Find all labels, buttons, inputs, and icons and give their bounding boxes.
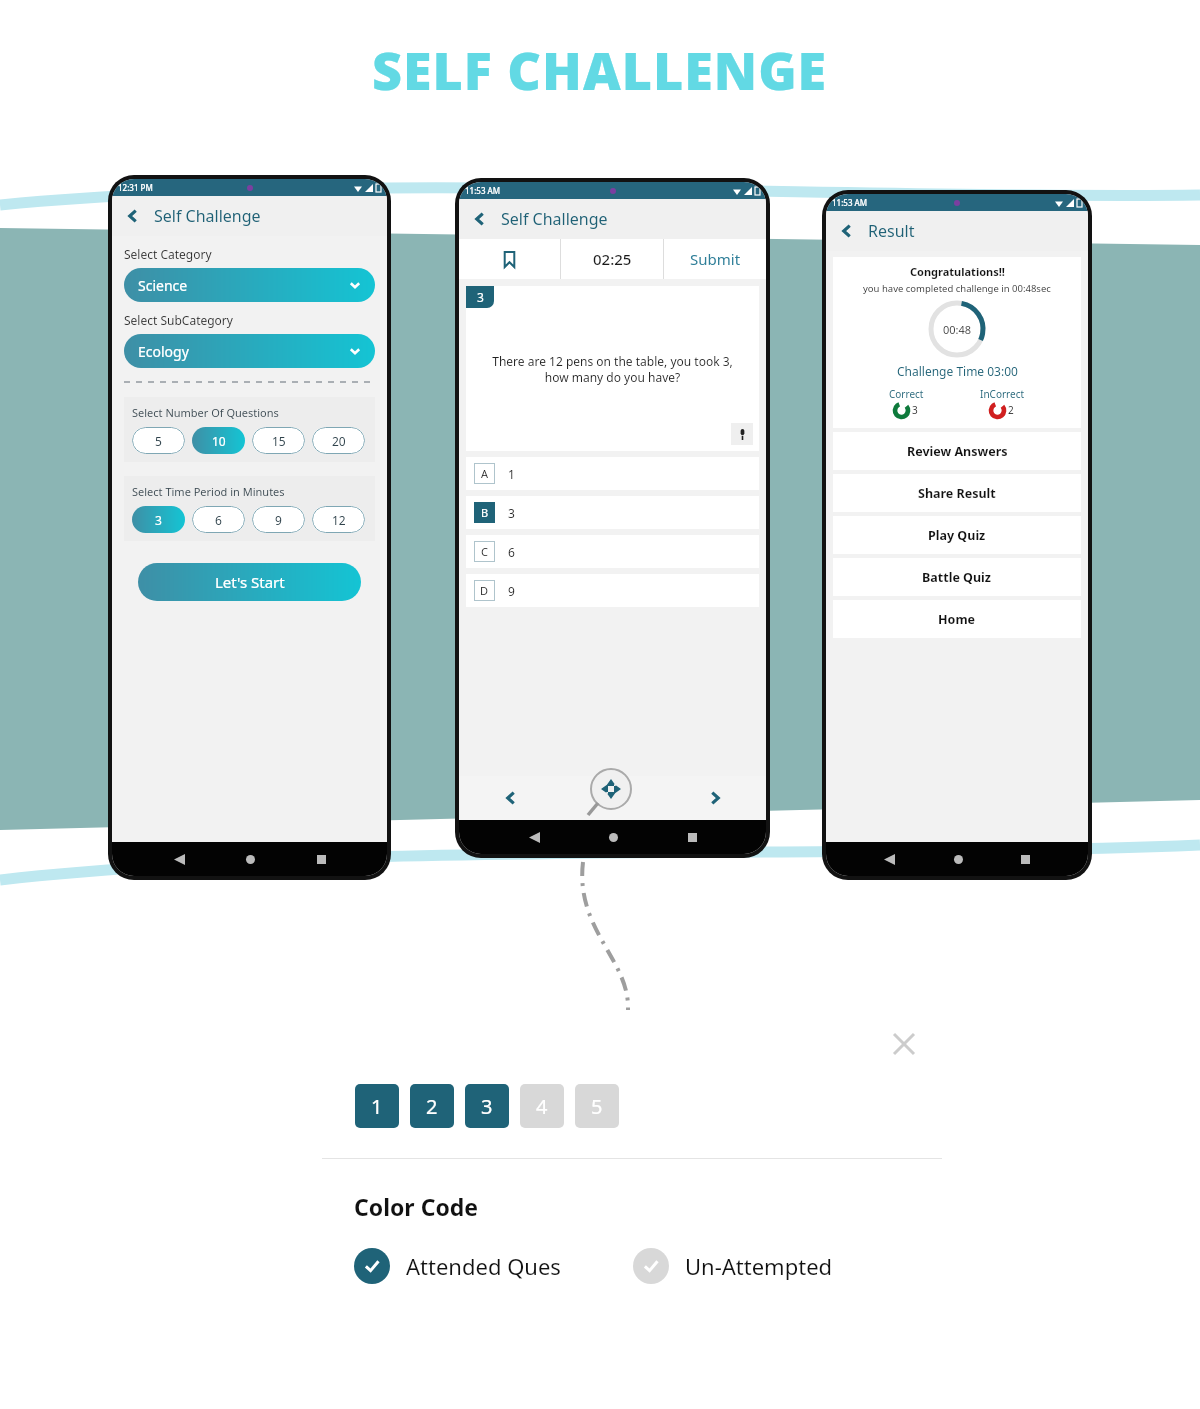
staticText: 02:25: [593, 249, 632, 269]
staticText: 10: [212, 433, 226, 449]
button[interactable]: Battle Quiz: [833, 558, 1081, 596]
staticText: A: [481, 466, 489, 481]
staticText: C: [481, 544, 488, 559]
staticText: 9: [508, 583, 515, 599]
staticText: 11:53 AM: [465, 185, 501, 196]
staticText: Select Number Of Questions: [132, 405, 279, 420]
staticText: InCorrect: [980, 387, 1025, 401]
button[interactable]: Back: [120, 203, 146, 229]
staticText: you have completed challenge in 00:48sec: [863, 282, 1051, 295]
staticText: D: [480, 583, 489, 598]
button[interactable]: Review Answers: [833, 432, 1081, 470]
staticText: 3: [155, 512, 162, 528]
staticText: 2: [426, 1093, 438, 1120]
staticText: 1: [371, 1093, 383, 1120]
button[interactable]: Home: [833, 600, 1081, 638]
staticText: Review Answers: [907, 443, 1008, 460]
button[interactable]: Science: [124, 268, 375, 302]
staticText: Attended Ques: [406, 1251, 561, 1281]
button[interactable]: Let's Start: [138, 563, 361, 601]
button[interactable]: C: [466, 535, 759, 568]
staticText: B: [481, 505, 489, 520]
staticText: 20: [332, 433, 346, 449]
button[interactable]: Close: [890, 1030, 918, 1058]
staticText: 9: [275, 512, 282, 528]
staticText: Color Code: [354, 1191, 479, 1222]
button[interactable]: Share Result: [833, 474, 1081, 512]
staticText: Battle Quiz: [922, 569, 992, 586]
staticText: Share Result: [918, 485, 996, 502]
staticText: Select Time Period in Minutes: [132, 484, 285, 499]
staticText: 6: [508, 544, 515, 560]
staticText: 3: [481, 1093, 493, 1120]
staticText: 12:31 PM: [118, 182, 153, 193]
staticText: Challenge Time 03:00: [897, 363, 1018, 379]
staticText: 6: [215, 512, 222, 528]
staticText: Ecology: [138, 342, 189, 361]
button[interactable]: Bookmark: [459, 239, 560, 279]
staticText: Correct: [889, 387, 924, 401]
staticText: Let's Start: [215, 572, 285, 592]
staticText: Home: [938, 611, 976, 628]
button[interactable]: D: [466, 574, 759, 607]
button[interactable]: 9: [252, 506, 305, 533]
button[interactable]: Ecology: [124, 334, 375, 368]
button[interactable]: 3: [132, 506, 185, 533]
button[interactable]: Attended Ques: [354, 1248, 561, 1284]
button[interactable]: 20: [312, 427, 365, 454]
staticText: 5: [155, 433, 162, 449]
staticText: Submit: [690, 249, 741, 269]
staticText: 15: [272, 433, 286, 449]
staticText: Congratulations!!: [910, 264, 1005, 279]
button[interactable]: Previous: [459, 776, 562, 820]
staticText: 3: [912, 403, 918, 417]
staticText: 11:53 AM: [832, 197, 868, 208]
button[interactable]: 5: [132, 427, 185, 454]
button[interactable]: 2: [410, 1084, 454, 1128]
staticText: 3: [477, 289, 484, 305]
staticText: There are 12 pens on the table, you took…: [492, 353, 733, 385]
button[interactable]: 4: [520, 1084, 564, 1128]
button[interactable]: Submit: [664, 239, 766, 279]
button[interactable]: 10: [192, 427, 245, 454]
button[interactable]: Voice: [731, 423, 753, 445]
staticText: Un-Attempted: [685, 1251, 833, 1281]
button[interactable]: Back: [467, 206, 493, 232]
staticText: Select SubCategory: [124, 312, 233, 328]
staticText: Select Category: [124, 246, 212, 262]
staticText: Play Quiz: [928, 527, 986, 544]
button[interactable]: 1: [355, 1084, 399, 1128]
staticText: Self Challenge: [501, 208, 608, 230]
button[interactable]: Back: [834, 218, 860, 244]
staticText: Science: [138, 276, 188, 295]
staticText: Self Challenge: [154, 205, 261, 227]
staticText: 1: [508, 466, 515, 482]
staticText: SELF CHALLENGE: [372, 34, 828, 105]
button[interactable]: Un-Attempted: [633, 1248, 833, 1284]
button[interactable]: 12: [312, 506, 365, 533]
staticText: 2: [1008, 403, 1014, 417]
button[interactable]: 15: [252, 427, 305, 454]
staticText: 5: [591, 1093, 603, 1120]
button[interactable]: Next: [664, 776, 766, 820]
button[interactable]: B: [466, 496, 759, 529]
button[interactable]: 6: [192, 506, 245, 533]
button[interactable]: Play Quiz: [833, 516, 1081, 554]
button[interactable]: 3: [465, 1084, 509, 1128]
staticText: 3: [508, 505, 515, 521]
button[interactable]: 5: [575, 1084, 619, 1128]
staticText: 00:48: [943, 322, 972, 337]
button[interactable]: A: [466, 457, 759, 490]
staticText: Result: [868, 220, 915, 242]
staticText: 12: [332, 512, 346, 528]
staticText: 4: [536, 1093, 548, 1120]
